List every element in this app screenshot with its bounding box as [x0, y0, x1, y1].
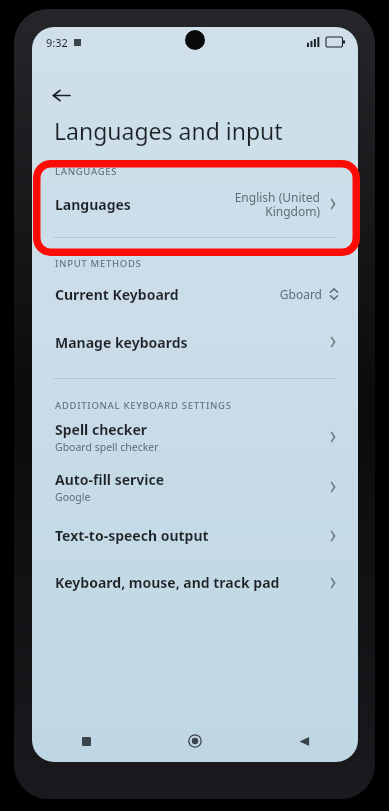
- button[interactable]: Keyboard, mouse, and track pad: [32, 559, 358, 606]
- staticText: Languages and input: [54, 115, 283, 146]
- button[interactable]: Spell checker: [32, 412, 358, 462]
- button[interactable]: Recent apps: [69, 724, 103, 758]
- staticText: Google: [55, 490, 91, 504]
- staticText: Auto-fill service: [55, 470, 165, 489]
- button[interactable]: Back: [44, 78, 78, 112]
- button[interactable]: Current Keyboard: [32, 270, 358, 318]
- button[interactable]: Home: [178, 724, 212, 758]
- button[interactable]: Languages: [32, 178, 358, 230]
- button[interactable]: Text-to-speech output: [32, 512, 358, 559]
- staticText: 9:32: [46, 35, 68, 50]
- staticText: English (United Kingdom): [224, 189, 320, 220]
- staticText: INPUT METHODS: [55, 257, 142, 270]
- staticText: Languages: [55, 195, 131, 214]
- button[interactable]: Auto-fill service: [32, 462, 358, 512]
- staticText: Gboard spell checker: [55, 440, 159, 454]
- staticText: Gboard: [279, 286, 322, 302]
- staticText: Current Keyboard: [55, 285, 179, 304]
- staticText: Manage keyboards: [55, 333, 188, 352]
- staticText: Text-to-speech output: [55, 526, 209, 545]
- staticText: Spell checker: [55, 420, 148, 439]
- staticText: LANGUAGES: [55, 165, 118, 178]
- button[interactable]: Back: [287, 724, 321, 758]
- staticText: ADDITIONAL KEYBOARD SETTINGS: [55, 399, 232, 412]
- staticText: Keyboard, mouse, and track pad: [55, 573, 280, 592]
- button[interactable]: Manage keyboards: [32, 318, 358, 366]
